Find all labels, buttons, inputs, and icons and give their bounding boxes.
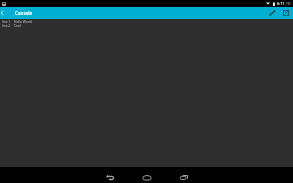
staticText: Cool: [14, 24, 21, 28]
button[interactable]: Back: [91, 167, 128, 183]
staticText: Hello World: [14, 20, 32, 24]
staticText: PM: [286, 2, 291, 6]
staticText: line 1: [2, 20, 14, 24]
button[interactable]: Edit: [265, 7, 279, 19]
staticText: 6:11: [277, 1, 285, 6]
button[interactable]: Home: [128, 167, 165, 183]
button[interactable]: Navigate up: [0, 7, 12, 19]
button[interactable]: Recent apps: [165, 167, 202, 183]
button[interactable]: Open in new window: [279, 7, 293, 19]
staticText: line 2: [2, 24, 14, 28]
staticText: Console: [15, 10, 33, 16]
